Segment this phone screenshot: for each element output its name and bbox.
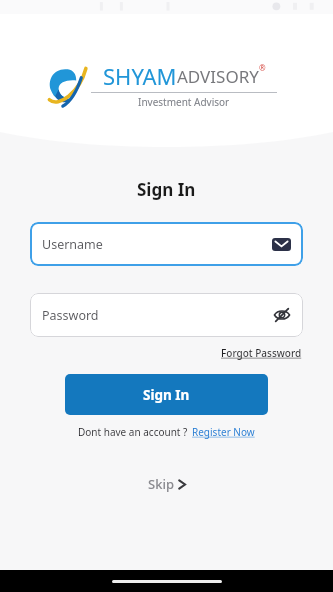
staticText: Forgot Password: [221, 346, 302, 360]
button[interactable]: Username: [30, 222, 303, 266]
staticText: Username: [42, 236, 272, 253]
staticText: Skip: [148, 475, 174, 493]
staticText: ADVISORY: [177, 65, 259, 88]
staticText: ®: [259, 62, 266, 73]
button[interactable]: Forgot Password: [221, 346, 302, 360]
staticText: Investment Advisor: [138, 95, 230, 109]
staticText: SHYAM: [103, 61, 177, 91]
other: Email: [272, 235, 291, 254]
button[interactable]: Skip: [140, 471, 194, 497]
staticText: Register Now: [192, 425, 255, 439]
staticText: Sign In: [137, 178, 196, 201]
button[interactable]: Password: [30, 293, 303, 337]
button[interactable]: Show password: [273, 306, 291, 324]
staticText: Sign In: [143, 386, 190, 404]
staticText: Password: [42, 307, 273, 324]
staticText: Dont have an account ?: [78, 425, 188, 439]
button[interactable]: Sign In: [65, 374, 268, 415]
button[interactable]: Dont have an account ?: [78, 425, 255, 439]
